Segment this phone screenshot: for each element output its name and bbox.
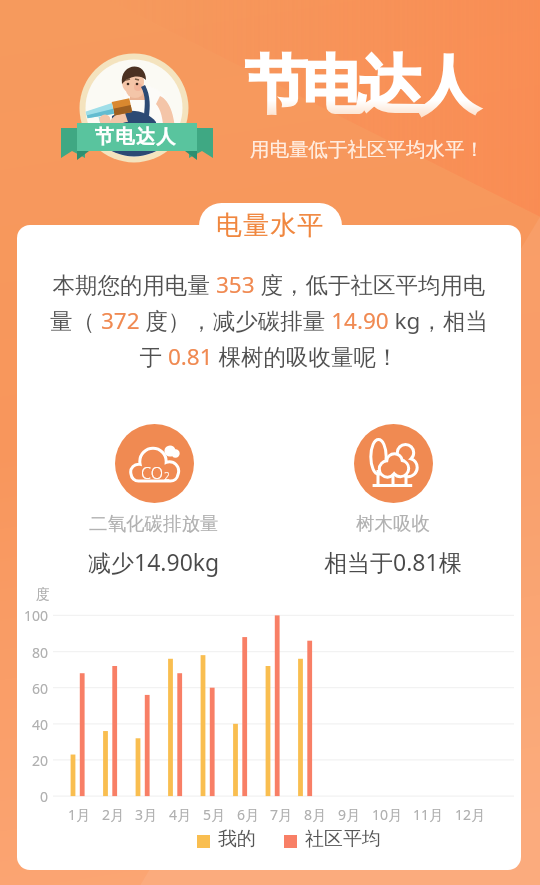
staticText: 2月 [102, 805, 125, 824]
staticText: 社区平均 [305, 827, 381, 851]
staticText: 7月 [270, 805, 293, 824]
staticText: 二氧化碳排放量 [89, 512, 219, 535]
staticText: 3月 [135, 805, 158, 824]
other: CO2 emissions [115, 424, 194, 503]
staticText: 1月 [68, 805, 91, 824]
staticText: 0 [17, 787, 48, 806]
staticText: 本期您的用电量 353 度，低于社区平均用电量（ 372 度），减少碳排量 14… [44, 269, 494, 372]
staticText: 80 [17, 643, 48, 662]
staticText: 10月 [372, 805, 403, 824]
staticText: 5月 [203, 805, 226, 824]
button[interactable]: Tree absorption [354, 424, 433, 503]
staticText: 4月 [169, 805, 192, 824]
staticText: 8月 [304, 805, 327, 824]
staticText: 11月 [413, 805, 444, 824]
staticText: 2 [164, 469, 170, 483]
staticText: CO [141, 462, 163, 484]
staticText: 我的 [218, 827, 256, 851]
staticText: 减少14.90kg [88, 546, 220, 577]
button[interactable]: CO2 emissions [115, 424, 194, 503]
staticText: 20 [17, 751, 48, 770]
staticText: 40 [17, 715, 48, 734]
staticText: 度 [36, 586, 50, 604]
staticText: 100 [17, 606, 48, 625]
staticText: 电量水平 [216, 209, 325, 242]
staticText: 6月 [237, 805, 260, 824]
staticText: 节电达人 [94, 125, 176, 149]
staticText: 用电量低于社区平均水平！ [250, 137, 484, 162]
other: Tree absorption [354, 424, 433, 503]
staticText: 12月 [455, 805, 486, 824]
staticText: 60 [17, 679, 48, 698]
staticText: 相当于0.81棵 [324, 546, 462, 577]
staticText: 9月 [338, 805, 361, 824]
staticText: 节电达人 [245, 46, 475, 124]
button[interactable]: 电量水平 [199, 203, 342, 248]
staticText: 树木吸收 [356, 512, 430, 535]
